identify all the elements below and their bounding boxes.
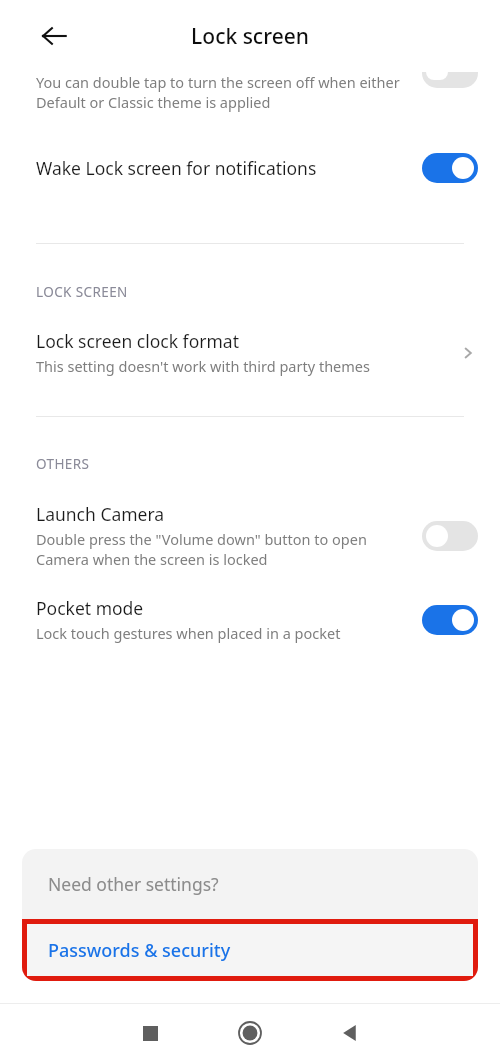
staticText: This setting doesn't work with third par… [36, 356, 370, 376]
staticText: Lock screen [191, 22, 309, 51]
staticText: OTHERS [36, 455, 90, 473]
staticText: Passwords & security [48, 938, 231, 963]
staticText: Launch Camera [36, 502, 165, 526]
staticText: You can double tap to turn the screen of… [36, 72, 406, 113]
button[interactable]: Wake Lock screen for notifications [0, 153, 500, 183]
staticText: Double press the "Volume down" button to… [36, 529, 406, 570]
button[interactable]: Back [30, 12, 78, 60]
button[interactable]: Recents [100, 1004, 200, 1062]
button[interactable]: You can double tap to turn the screen of… [0, 72, 500, 127]
button[interactable]: Back [300, 1004, 400, 1062]
button[interactable]: Launch Camera [0, 502, 500, 570]
staticText: Need other settings? [48, 872, 219, 896]
staticText: Wake Lock screen for notifications [36, 156, 317, 180]
button[interactable]: Home [200, 1004, 300, 1062]
staticText: LOCK SCREEN [36, 283, 128, 301]
staticText: Lock touch gestures when placed in a poc… [36, 623, 341, 643]
staticText: Lock screen clock format [36, 329, 239, 353]
staticText: Pocket mode [36, 596, 144, 620]
button[interactable]: Passwords & security [22, 919, 478, 981]
button[interactable]: Pocket mode [0, 596, 500, 643]
button[interactable]: Lock screen clock format [0, 329, 500, 376]
